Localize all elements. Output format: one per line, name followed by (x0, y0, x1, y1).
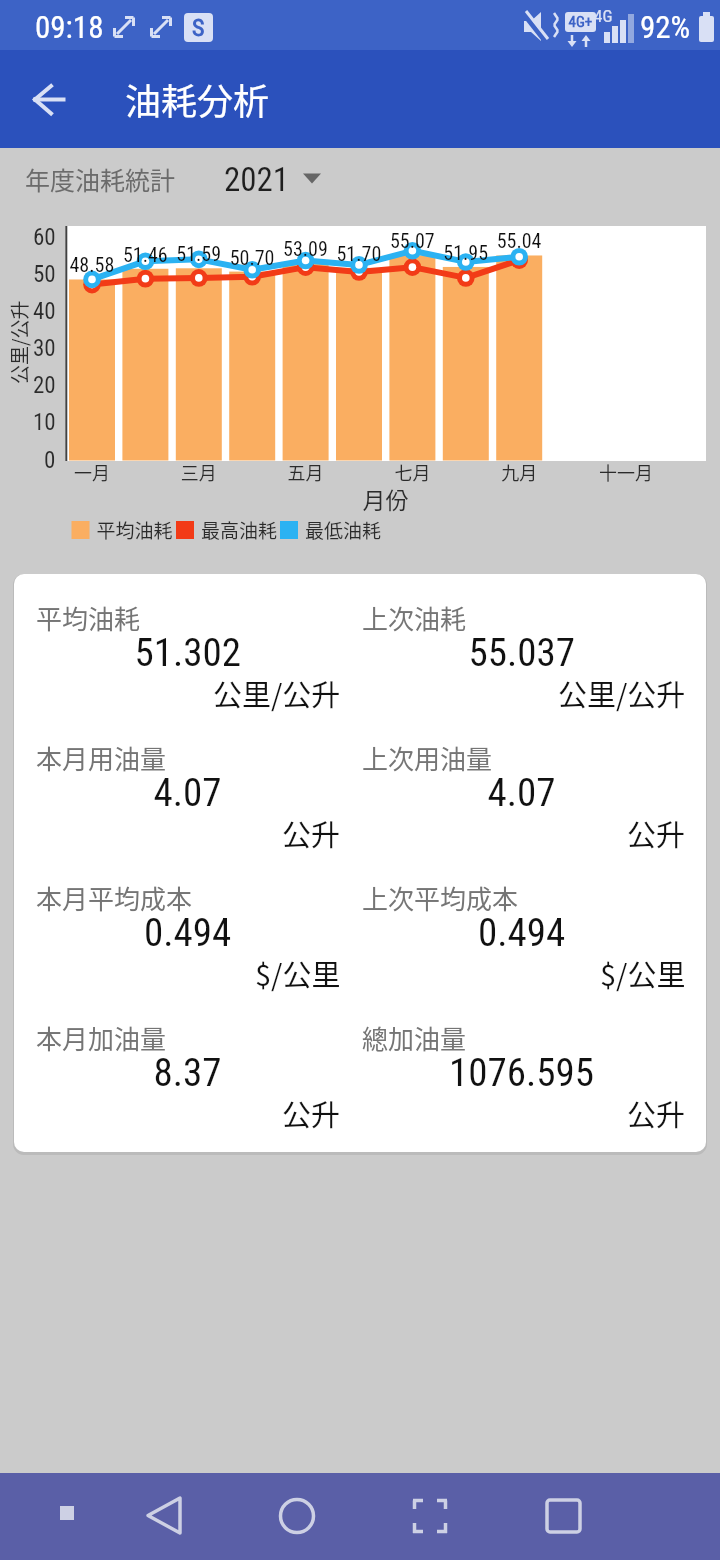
button[interactable] (130, 1481, 202, 1552)
button[interactable] (515, 1481, 587, 1552)
button[interactable] (210, 152, 335, 207)
button[interactable] (12, 63, 84, 135)
button[interactable] (255, 1481, 327, 1552)
button[interactable] (380, 1481, 452, 1552)
